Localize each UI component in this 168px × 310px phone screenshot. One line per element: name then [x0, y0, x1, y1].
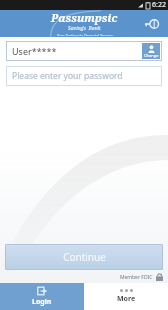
staticText: Continue — [63, 250, 106, 264]
staticText: Member FDIC — [120, 274, 153, 281]
staticText: Passumpsic — [51, 10, 118, 25]
staticText: User***** — [12, 45, 140, 57]
button[interactable]: More — [84, 283, 168, 310]
staticText: Please enter your password — [12, 70, 123, 82]
button[interactable]: User***** — [6, 41, 162, 61]
staticText: Login — [32, 297, 52, 307]
staticText: Change — [144, 53, 159, 58]
staticText: Your Partner in Financial Success — [57, 33, 113, 36]
staticText: 6:22 — [152, 0, 166, 10]
button[interactable]: Continue — [5, 244, 163, 270]
button[interactable]: Change user — [142, 43, 160, 59]
staticText: Savings Bank — [68, 25, 101, 32]
button[interactable]: Login — [0, 283, 84, 310]
staticText: More — [117, 294, 136, 304]
button[interactable]: Please enter your password — [6, 66, 162, 86]
button[interactable]: Rates — [142, 15, 160, 33]
